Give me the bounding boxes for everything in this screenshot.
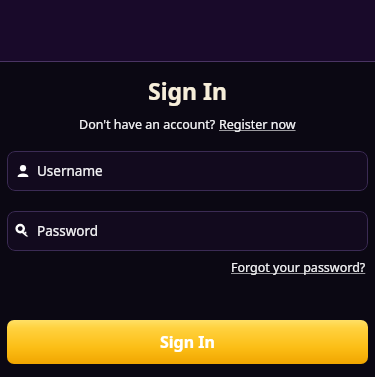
staticText: Password: [37, 222, 99, 240]
button[interactable]: Register now: [219, 116, 296, 133]
button[interactable]: Username: [7, 151, 368, 191]
staticText: Forgot your password?: [231, 259, 366, 276]
staticText: Register now: [219, 116, 296, 133]
staticText: Sign In: [160, 331, 215, 353]
button[interactable]: Forgot your password?: [231, 259, 366, 276]
staticText: Don't have an account?: [79, 116, 219, 133]
staticText: Sign In: [148, 75, 227, 106]
button[interactable]: Password: [7, 211, 368, 251]
staticText: Username: [37, 162, 103, 180]
button[interactable]: Sign In: [7, 320, 368, 364]
